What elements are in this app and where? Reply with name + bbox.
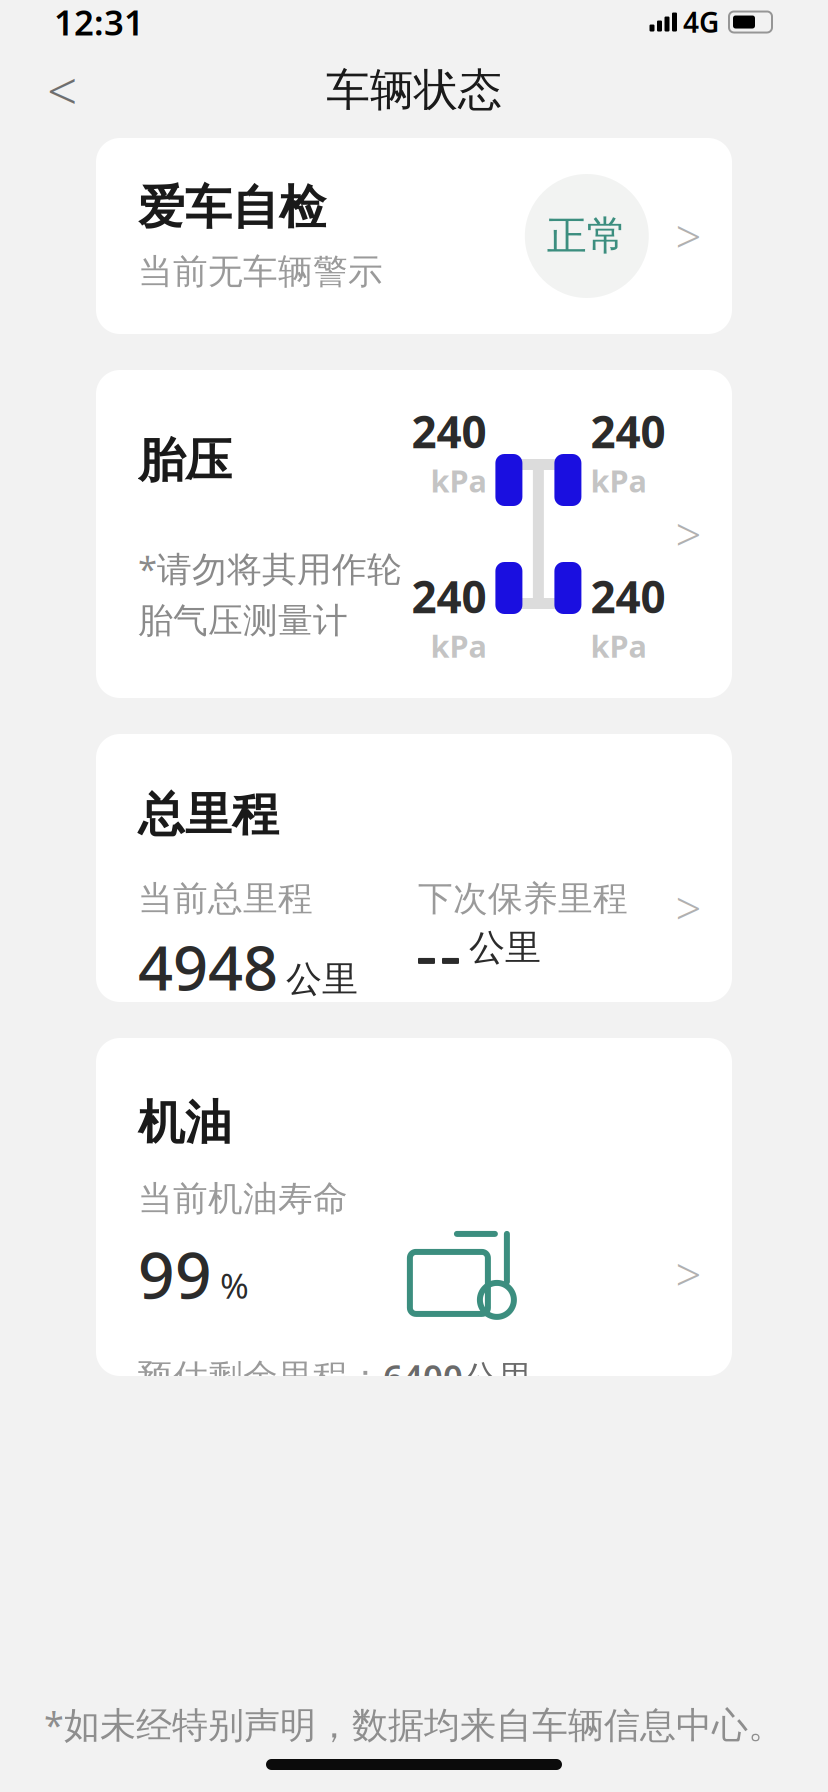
staticText: kPa (430, 625, 486, 666)
staticText: 下次保养里程 (418, 877, 628, 920)
staticText: > (675, 504, 701, 564)
staticText: 当前无车辆警示 (138, 250, 383, 293)
staticText: 4948 (138, 926, 278, 1007)
button[interactable]: 返回 (32, 60, 92, 120)
staticText: > (675, 206, 701, 266)
staticText: kPa (590, 625, 646, 666)
staticText: kPa (430, 460, 486, 501)
staticText: 公里 (469, 926, 541, 970)
staticText: 公里 (286, 957, 358, 1001)
staticText: 当前机油寿命 (138, 1177, 348, 1220)
staticText: kPa (590, 460, 646, 501)
staticText: 胎气压测量计 (138, 599, 348, 642)
staticText: 6400公里 (383, 1354, 533, 1400)
staticText: 99 (138, 1231, 212, 1316)
staticText: 4G (683, 3, 719, 41)
staticText: 240 (411, 567, 486, 625)
staticText: 爱车自检 (138, 179, 326, 236)
staticText: > (675, 1244, 701, 1304)
button[interactable]: 爱车自检 (96, 138, 732, 334)
button[interactable]: 总里程 (96, 734, 732, 1002)
staticText: 240 (590, 567, 665, 625)
staticText: 胎压 (138, 432, 232, 489)
staticText: *如未经特别声明，数据均来自车辆信息中心。 (44, 1700, 784, 1748)
button[interactable]: 胎压 (96, 370, 732, 698)
staticText: 240 (411, 402, 486, 460)
staticText: 机油 (138, 1094, 232, 1151)
staticText: 240 (590, 402, 665, 460)
staticText: > (675, 878, 701, 938)
staticText: *请勿将其用作轮 (138, 545, 402, 591)
staticText: % (220, 1262, 249, 1308)
staticText: < (47, 55, 77, 125)
button[interactable]: 机油 (96, 1038, 732, 1376)
staticText: 12:31 (54, 0, 144, 45)
staticText: 预估剩余里程： (138, 1356, 383, 1398)
staticText: 当前总里程 (138, 877, 313, 920)
staticText: 正常 (547, 211, 627, 260)
staticText: 总里程 (138, 786, 279, 843)
staticText: 车辆状态 (326, 63, 502, 117)
